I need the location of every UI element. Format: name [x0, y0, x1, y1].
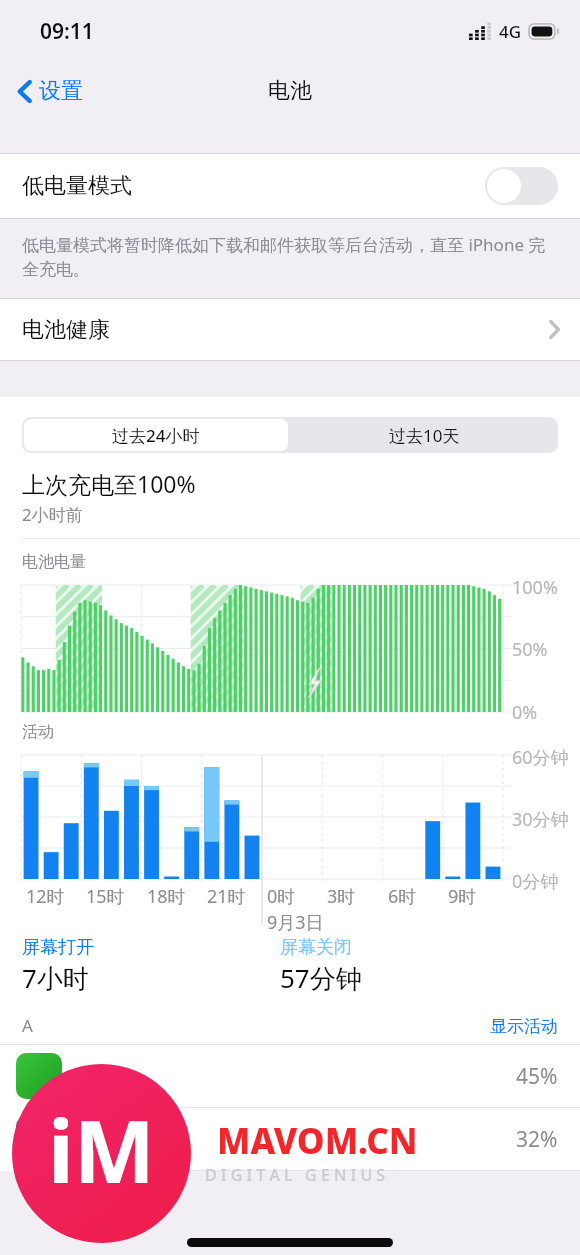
staticText: iM [48, 1091, 155, 1208]
button[interactable]: 过去24小时 [24, 419, 288, 451]
staticText: 低电量模式将暂时降低如下载和邮件获取等后台活动，直至 iPhone 完全充电。 [22, 233, 556, 280]
staticText: 3时 [327, 884, 356, 909]
staticText: 王者之战 [76, 1126, 516, 1152]
staticText: 电池 [268, 77, 312, 105]
staticText: 活动 [22, 722, 54, 742]
staticText: 0% [512, 700, 538, 725]
staticText: 9月3日 [267, 910, 324, 935]
staticText: 32% [516, 1125, 558, 1154]
button[interactable]: 设置 [14, 69, 87, 113]
staticText: 上次充电至100% [22, 468, 196, 499]
staticText: 电池健康 [22, 316, 549, 344]
staticText: 屏幕关闭 [280, 936, 352, 959]
button[interactable]: 低电量模式开关 [485, 167, 558, 205]
other: 信号 [469, 23, 494, 40]
staticText: 屏幕打开 [22, 936, 94, 959]
staticText: 电池电量 [22, 552, 86, 572]
staticText: 21时 [207, 884, 246, 909]
button[interactable]: 低电量模式 [0, 154, 580, 218]
staticText: 09:11 [40, 17, 94, 46]
staticText: 50% [512, 637, 548, 662]
staticText: 57分钟 [280, 960, 362, 996]
staticText: 30分钟 [512, 807, 569, 832]
staticText: 设置 [39, 77, 83, 105]
staticText: 60分钟 [512, 745, 569, 770]
button[interactable]: 过去10天 [290, 417, 558, 453]
staticText: 过去24小时 [112, 424, 200, 447]
staticText: A [22, 1014, 490, 1037]
staticText: 100% [512, 575, 558, 600]
staticText: 2小时前 [22, 503, 83, 526]
button[interactable]: 显示活动 [490, 1016, 558, 1037]
staticText: 7小时 [22, 960, 89, 996]
staticText: 15时 [86, 884, 125, 909]
staticText: 45% [516, 1062, 558, 1091]
button[interactable]: 王者之战 [0, 1108, 580, 1170]
staticText: 18时 [147, 884, 186, 909]
staticText: 0分钟 [512, 869, 559, 894]
staticText: 12时 [26, 884, 65, 909]
staticText: 4G [499, 20, 522, 43]
staticText: 过去10天 [389, 424, 460, 447]
staticText: D I G I T A L G E N I U S [205, 1164, 386, 1186]
staticText: MAVOM.CN [217, 1117, 418, 1165]
other: 电池 [528, 23, 560, 40]
button[interactable]: 微信 [0, 1045, 580, 1107]
staticText: 微信 [76, 1063, 516, 1089]
button[interactable]: 电池健康 [0, 299, 580, 360]
staticText: 9时 [448, 884, 477, 909]
staticText: 6时 [388, 884, 417, 909]
staticText: 0时 [267, 884, 296, 909]
staticText: 低电量模式 [22, 172, 485, 200]
